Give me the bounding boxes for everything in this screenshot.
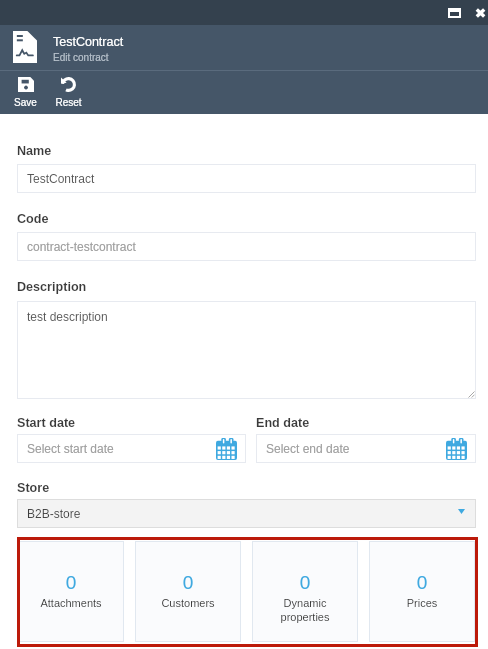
staticText: TestContract (53, 35, 124, 49)
button[interactable]: 0 (135, 541, 241, 642)
button[interactable]: Reset (47, 71, 90, 114)
staticText: 0 (369, 572, 475, 593)
staticText: Description (17, 280, 87, 294)
button[interactable]: Maximize window (443, 0, 465, 25)
button[interactable]: Save (4, 71, 47, 114)
staticText: contract-testcontract (27, 240, 467, 253)
button[interactable]: B2B-store (17, 499, 476, 528)
staticText: Name (17, 144, 52, 158)
staticText: Save (4, 97, 47, 108)
staticText: Reset (47, 97, 90, 108)
button[interactable]: TestContract (17, 164, 476, 193)
staticText: Code (17, 212, 49, 226)
button[interactable]: 0 (369, 541, 475, 642)
staticText: End date (256, 416, 310, 430)
staticText: Customers (135, 597, 241, 609)
button[interactable]: 0 (252, 541, 358, 642)
button[interactable]: Select end date (256, 434, 476, 463)
staticText: Select start date (27, 442, 216, 455)
button[interactable]: test description (17, 301, 476, 399)
staticText: 0 (252, 572, 358, 593)
staticText: Prices (369, 597, 475, 609)
staticText: test description (27, 310, 108, 323)
staticText: Start date (17, 416, 76, 430)
staticText: B2B-store (27, 507, 458, 520)
button[interactable]: 0 (18, 541, 124, 642)
button[interactable]: Close window (469, 0, 488, 25)
staticText: Attachments (18, 597, 124, 609)
button[interactable]: contract-testcontract (17, 232, 476, 261)
staticText: TestContract (27, 172, 467, 185)
button[interactable]: Select start date (17, 434, 246, 463)
staticText: Select end date (266, 442, 446, 455)
staticText: Edit contract (53, 52, 109, 63)
staticText: 0 (18, 572, 124, 593)
staticText: 0 (135, 572, 241, 593)
staticText: Store (17, 481, 50, 495)
staticText: Dynamic properties (252, 597, 358, 624)
